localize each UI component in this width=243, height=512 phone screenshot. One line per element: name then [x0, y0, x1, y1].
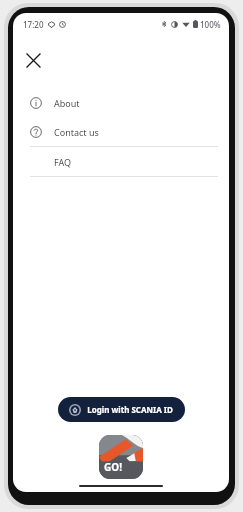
button[interactable]: Contact us — [13, 117, 229, 146]
staticText: About — [54, 97, 80, 109]
staticText: 17:20 — [23, 19, 44, 30]
staticText: 100% — [200, 19, 221, 30]
button[interactable]: Login with SCANIA ID — [58, 397, 185, 422]
staticText: Contact us — [54, 126, 99, 138]
staticText: FAQ — [54, 156, 72, 168]
button[interactable]: Close — [17, 44, 49, 76]
button[interactable]: FAQ — [13, 147, 229, 176]
staticText: Login with SCANIA ID — [87, 404, 173, 415]
staticText: GO! — [104, 460, 122, 474]
button[interactable]: About — [13, 88, 229, 117]
button[interactable]: Scania GO app icon — [99, 435, 143, 479]
